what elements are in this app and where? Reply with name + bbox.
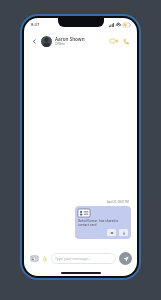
button[interactable]: Call — [120, 35, 132, 47]
staticText: Aaron Shown — [55, 36, 85, 42]
button[interactable]: Aaron Shown — [55, 36, 108, 46]
button[interactable]: Attach — [40, 254, 49, 263]
staticText: Offline — [55, 42, 66, 46]
button[interactable]: Save contact — [119, 229, 128, 236]
button[interactable]: Video call — [108, 35, 120, 47]
staticText: Rahul Kumar has shared a contact card — [78, 219, 128, 227]
button[interactable]: Share contact — [29, 253, 39, 263]
button[interactable]: View contact — [107, 229, 116, 236]
button[interactable]: Rahul Kumar has shared a contact card — [75, 206, 131, 239]
button[interactable]: Type your message... — [51, 253, 116, 264]
button[interactable]: Back — [29, 36, 39, 46]
staticText: April 20, 08:37 PM — [107, 200, 129, 204]
staticText: Type your message... — [55, 256, 91, 261]
button[interactable]: Send — [119, 252, 132, 265]
staticText: 8:37 — [31, 22, 40, 28]
